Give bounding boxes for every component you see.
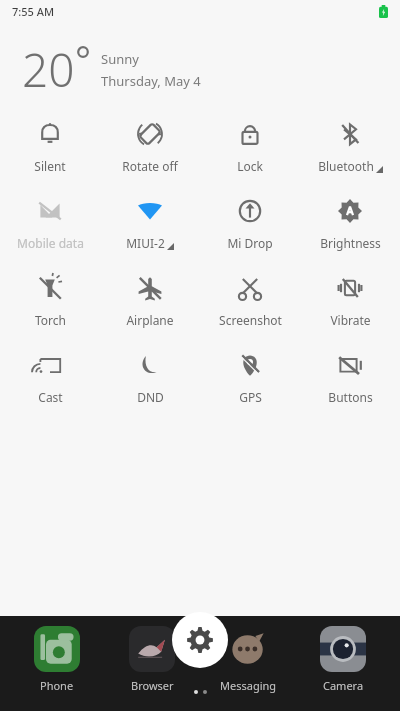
staticText: Thursday, May 4	[101, 72, 201, 90]
button[interactable]: Lock	[200, 115, 300, 178]
staticText: Mobile data	[17, 235, 84, 251]
staticText: Screenshot	[219, 312, 282, 328]
button[interactable]: Screenshot	[200, 269, 300, 332]
staticText: 20	[22, 38, 75, 101]
button[interactable]: Messaging	[209, 626, 287, 693]
button[interactable]: MIUI-2	[100, 192, 200, 255]
button[interactable]: Buttons	[300, 346, 400, 409]
staticText: Cast	[38, 389, 63, 405]
button[interactable]: Phone	[18, 626, 96, 693]
button[interactable]: Rotate off	[100, 115, 200, 178]
button[interactable]: Airplane	[100, 269, 200, 332]
button[interactable]: Settings	[172, 612, 228, 668]
staticText: Mi Drop	[227, 235, 273, 251]
staticText: MIUI-2	[126, 235, 165, 251]
button[interactable]: DND	[100, 346, 200, 409]
staticText: Airplane	[126, 312, 174, 328]
staticText: 7:55 AM	[12, 4, 55, 19]
staticText: Lock	[237, 158, 263, 174]
button[interactable]: Auto brightness settings	[348, 652, 382, 686]
button[interactable]: GPS	[200, 346, 300, 409]
button[interactable]: Mobile data	[0, 192, 100, 255]
button[interactable]: Bluetooth	[300, 115, 400, 178]
staticText: DND	[137, 389, 164, 405]
staticText: Sunny	[101, 50, 139, 68]
staticText: Bluetooth	[318, 158, 374, 174]
button[interactable]: Brightness	[300, 192, 400, 255]
staticText: Phone	[40, 678, 74, 693]
staticText: Camera	[323, 678, 364, 693]
button[interactable]: Vibrate	[300, 269, 400, 332]
button[interactable]: Mi Drop	[200, 192, 300, 255]
staticText: GPS	[239, 389, 262, 405]
staticText: Vibrate	[330, 312, 371, 328]
staticText: Buttons	[328, 389, 373, 405]
button[interactable]: Cast	[0, 346, 100, 409]
staticText: Browser	[131, 678, 174, 693]
button[interactable]: Browser	[113, 626, 191, 693]
button[interactable]: Torch	[0, 269, 100, 332]
staticText: Torch	[35, 312, 66, 328]
staticText: Silent	[34, 158, 66, 174]
staticText: Messaging	[220, 678, 277, 693]
button[interactable]: Brightness slider	[66, 654, 334, 684]
staticText: Brightness	[320, 235, 381, 251]
button[interactable]: Silent	[0, 115, 100, 178]
staticText: Rotate off	[122, 158, 178, 174]
button[interactable]: Camera	[304, 626, 382, 693]
button[interactable]: Low brightness	[18, 652, 52, 686]
